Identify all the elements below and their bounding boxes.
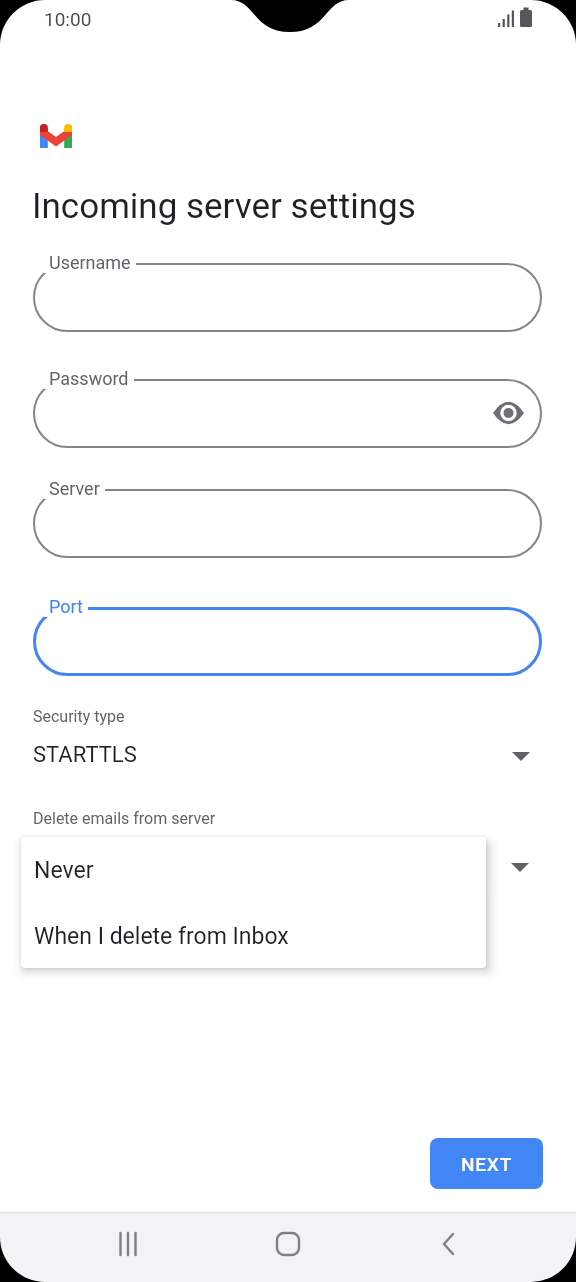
staticText: Server bbox=[49, 478, 100, 499]
button[interactable] bbox=[33, 607, 542, 676]
button[interactable] bbox=[424, 1222, 476, 1274]
button[interactable] bbox=[33, 379, 542, 448]
staticText: When I delete from Inbox bbox=[34, 923, 289, 950]
staticText: 10:00 bbox=[44, 8, 92, 30]
staticText: Password bbox=[49, 368, 129, 389]
button[interactable] bbox=[262, 1222, 314, 1274]
button[interactable] bbox=[33, 263, 542, 332]
button[interactable]: Never bbox=[21, 844, 486, 903]
staticText: NEXT bbox=[461, 1153, 513, 1175]
staticText: STARTTLS bbox=[33, 742, 137, 768]
staticText: Incoming server settings bbox=[32, 186, 416, 227]
staticText: Never bbox=[34, 857, 94, 884]
button[interactable]: When I delete from Inbox bbox=[21, 910, 486, 968]
staticText: Username bbox=[49, 252, 131, 273]
button[interactable]: STARTTLS bbox=[33, 737, 542, 779]
staticText: Delete emails from server bbox=[33, 809, 216, 828]
button[interactable] bbox=[33, 489, 542, 558]
staticText: Port bbox=[49, 596, 83, 617]
staticText: Security type bbox=[33, 707, 125, 726]
button[interactable]: NEXT bbox=[430, 1138, 543, 1189]
button[interactable] bbox=[103, 1222, 155, 1274]
